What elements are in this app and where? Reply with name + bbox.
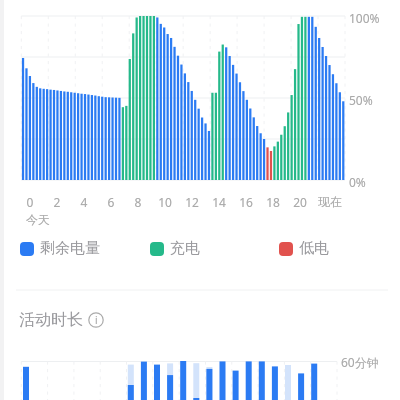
- staticText: 14: [204, 194, 234, 210]
- staticText: 现在: [315, 194, 345, 209]
- staticText: i: [95, 313, 98, 327]
- staticText: 12: [177, 194, 207, 210]
- staticText: 6: [96, 194, 126, 210]
- staticText: 100%: [349, 10, 380, 26]
- staticText: 16: [231, 194, 261, 210]
- staticText: 18: [258, 194, 288, 210]
- staticText: 充电: [170, 239, 200, 258]
- staticText: 0: [15, 194, 45, 210]
- button[interactable]: 活动时长: [19, 310, 104, 330]
- other: 更多信息: [88, 312, 104, 328]
- staticText: 剩余电量: [40, 239, 100, 258]
- staticText: 2: [42, 194, 72, 210]
- staticText: 低电: [299, 239, 329, 258]
- button[interactable]: 低电: [279, 239, 329, 258]
- staticText: 50%: [349, 92, 373, 108]
- staticText: 活动时长: [19, 310, 83, 330]
- staticText: 8: [123, 194, 153, 210]
- staticText: 60分钟: [341, 354, 379, 370]
- staticText: 20: [285, 194, 315, 210]
- button[interactable]: 剩余电量: [20, 239, 100, 258]
- staticText: 10: [150, 194, 180, 210]
- staticText: 4: [69, 194, 99, 210]
- button[interactable]: 充电: [150, 239, 200, 258]
- staticText: 今天: [26, 212, 50, 227]
- staticText: 0%: [349, 174, 366, 190]
